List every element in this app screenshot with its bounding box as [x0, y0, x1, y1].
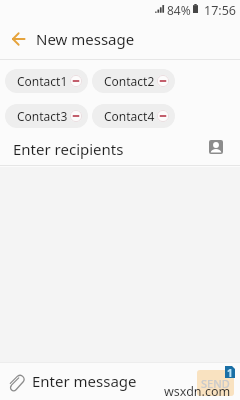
- button[interactable]: Enter message: [32, 371, 137, 391]
- button[interactable]: SEND: [197, 370, 234, 396]
- button[interactable]: Contact2: [92, 69, 175, 93]
- button[interactable]: Contact1: [5, 69, 88, 93]
- button[interactable]: Navigate up: [2, 23, 34, 55]
- staticText: New message: [36, 29, 135, 49]
- button[interactable]: Add from contacts: [204, 135, 228, 159]
- staticText: wsxdn.com: [164, 383, 231, 400]
- staticText: Contact2: [104, 73, 155, 89]
- button[interactable]: Contact4: [92, 104, 175, 128]
- staticText: 1: [227, 366, 233, 378]
- staticText: SEND: [201, 376, 230, 391]
- button[interactable]: Attach file: [5, 372, 29, 396]
- staticText: Contact3: [17, 108, 68, 124]
- button[interactable]: Contact3: [5, 104, 88, 128]
- staticText: 84%: [167, 2, 191, 18]
- staticText: 17:56: [204, 2, 236, 19]
- staticText: Enter recipients: [13, 139, 124, 159]
- staticText: Contact1: [17, 73, 68, 89]
- staticText: Contact4: [104, 108, 155, 124]
